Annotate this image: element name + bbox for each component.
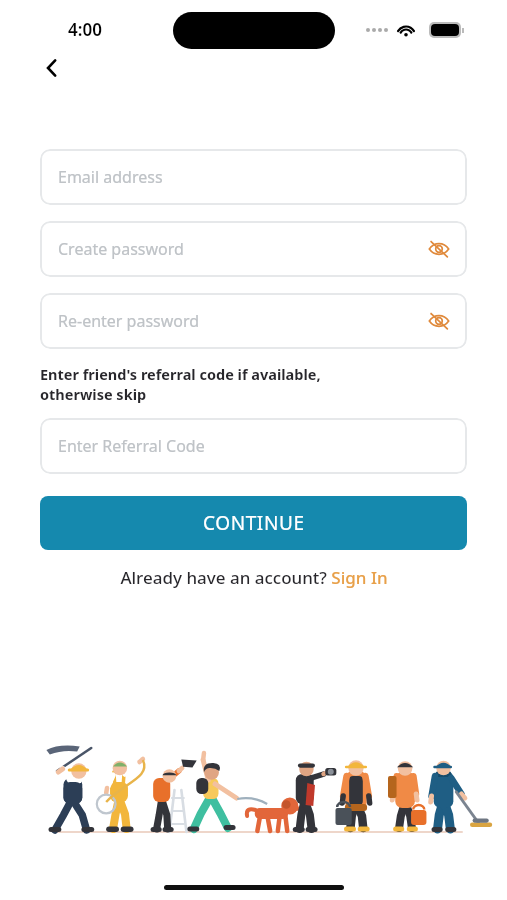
staticText: Already have an account? Sign In: [120, 566, 388, 589]
button[interactable]: Create password: [40, 221, 467, 277]
staticText: 4:00: [68, 18, 102, 41]
button[interactable]: Already have an account? Sign In: [40, 566, 467, 589]
staticText: Enter friend's referral code if availabl…: [40, 364, 321, 404]
staticText: Re-enter password: [58, 310, 200, 332]
staticText: Email address: [58, 166, 163, 188]
staticText: CONTINUE: [203, 510, 305, 536]
staticText: Create password: [58, 238, 184, 260]
button[interactable]: CONTINUE: [40, 496, 467, 550]
button[interactable]: Re-enter password: [40, 293, 467, 349]
button[interactable]: Email address: [40, 149, 467, 205]
button[interactable]: Back: [30, 46, 74, 90]
staticText: Enter Referral Code: [58, 435, 205, 457]
button[interactable]: Toggle password visibility: [421, 231, 457, 267]
button[interactable]: Toggle password visibility: [421, 303, 457, 339]
button[interactable]: Enter Referral Code: [40, 418, 467, 474]
